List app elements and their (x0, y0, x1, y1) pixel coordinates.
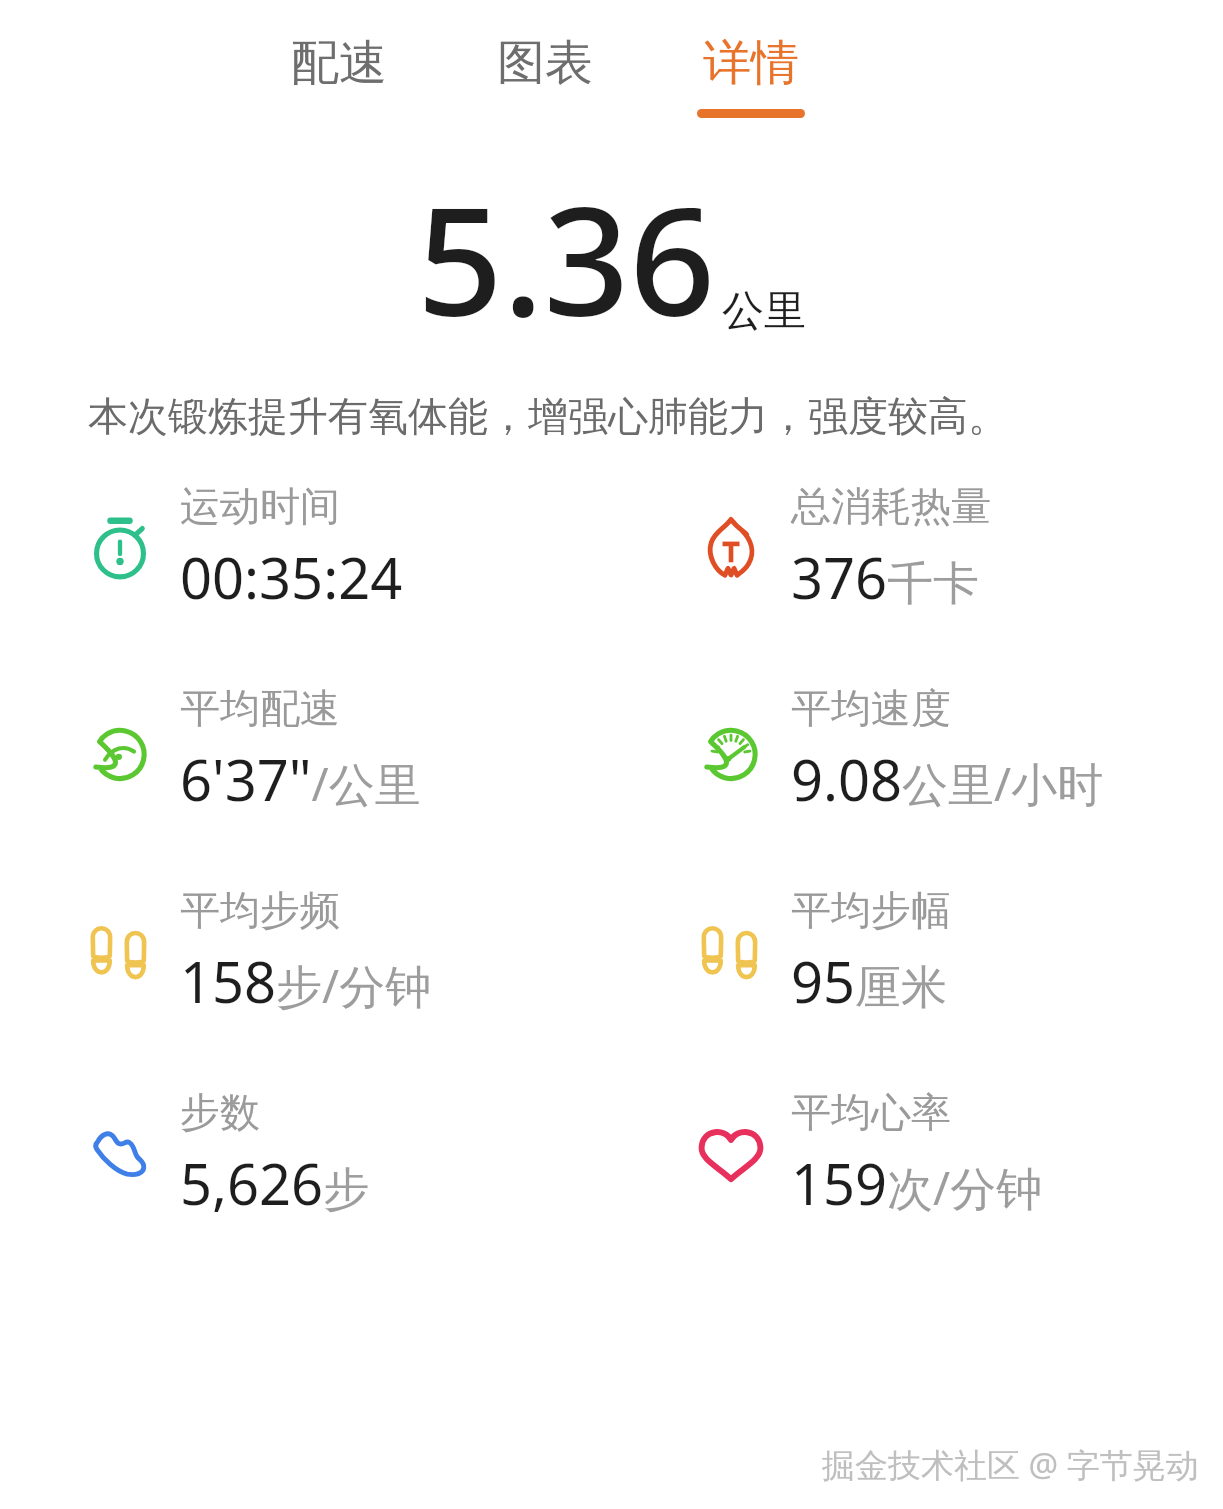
button[interactable]: Steps (0, 1087, 611, 1221)
button[interactable]: 配速 (275, 27, 403, 124)
button[interactable]: Heart rate (611, 1087, 1223, 1221)
staticText: 95厘米 (791, 943, 948, 1019)
staticText: 本次锻炼提升有氧体能，增强心肺能力，强度较高。 (88, 391, 1008, 441)
staticText: 5.36 (417, 156, 716, 360)
staticText: 平均步幅 (791, 885, 951, 935)
button[interactable]: 图表 (481, 27, 609, 124)
other: Cadence (84, 916, 156, 988)
staticText: 6'37"/公里 (180, 741, 421, 817)
staticText: 图表 (497, 33, 593, 93)
staticText: 运动时间 (180, 481, 340, 531)
other: Steps (84, 1118, 156, 1190)
staticText: 总消耗热量 (791, 481, 991, 531)
staticText: 平均心率 (791, 1087, 951, 1137)
other: Duration (84, 512, 156, 584)
staticText: 平均速度 (791, 683, 951, 733)
staticText: 9.08公里/小时 (791, 741, 1104, 817)
button[interactable]: 详情 (687, 27, 815, 124)
staticText: 158步/分钟 (180, 943, 432, 1019)
button[interactable]: Duration (0, 481, 611, 615)
staticText: 公里 (722, 285, 806, 338)
staticText: 平均配速 (180, 683, 340, 733)
staticText: 步数 (180, 1087, 260, 1137)
staticText: 配速 (291, 33, 387, 93)
staticText: 掘金技术社区 @ 字节晃动 (822, 1442, 1199, 1487)
other: Average pace (84, 714, 156, 786)
button[interactable]: Calories (611, 481, 1223, 615)
button[interactable]: Average pace (0, 683, 611, 817)
staticText: 5,626步 (180, 1145, 370, 1221)
staticText: 00:35:24 (180, 539, 403, 615)
other: Heart rate (695, 1118, 767, 1190)
staticText: 平均步频 (180, 885, 340, 935)
other: Calories (695, 512, 767, 584)
button[interactable]: Average speed (611, 683, 1223, 817)
button[interactable]: Cadence (0, 885, 611, 1019)
staticText: 详情 (703, 33, 799, 93)
other: Average speed (695, 714, 767, 786)
staticText: 159次/分钟 (791, 1145, 1043, 1221)
button[interactable]: Stride (611, 885, 1223, 1019)
other: Stride (695, 916, 767, 988)
staticText: 376千卡 (791, 539, 980, 615)
